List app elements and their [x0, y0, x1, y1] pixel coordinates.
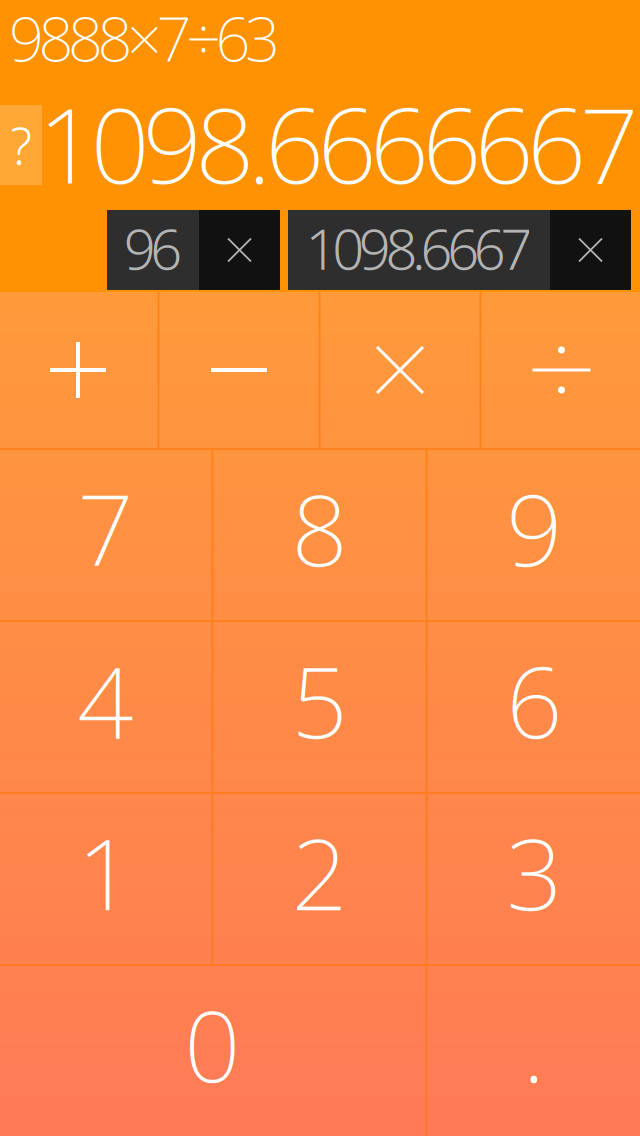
button[interactable]: 6 — [428, 622, 640, 792]
button[interactable]: Add — [0, 292, 157, 448]
button[interactable]: Help — [0, 105, 42, 185]
staticText: 3 — [506, 806, 562, 937]
button[interactable]: Remove 96 — [199, 210, 280, 290]
button[interactable]: 0 — [0, 966, 425, 1136]
staticText: 1098.6667 — [306, 211, 532, 285]
button[interactable]: 4 — [0, 622, 211, 792]
button[interactable]: Divide — [481, 292, 640, 448]
staticText: 8 — [291, 462, 347, 593]
staticText: 6 — [506, 634, 562, 765]
button[interactable]: 3 — [428, 794, 640, 964]
button[interactable]: 1 — [0, 794, 211, 964]
button[interactable]: 5 — [213, 622, 426, 792]
staticText: 5 — [291, 634, 347, 765]
staticText: 9 — [506, 462, 562, 593]
staticText: 96 — [124, 211, 182, 285]
staticText: 4 — [77, 634, 133, 765]
button[interactable]: 8 — [213, 450, 426, 620]
button[interactable]: 9 — [428, 450, 640, 620]
button[interactable]: 2 — [213, 794, 426, 964]
staticText: . — [523, 978, 546, 1109]
staticText: 7 — [77, 462, 133, 593]
staticText: 9888×7÷63 — [9, 0, 280, 78]
staticText: 1 — [77, 806, 133, 937]
button[interactable]: Multiply — [320, 292, 479, 448]
button[interactable]: 1098.6667 — [288, 210, 550, 290]
button[interactable]: Remove 1098.6667 — [550, 210, 631, 290]
staticText: 2 — [291, 806, 347, 937]
staticText: ? — [10, 111, 31, 179]
button[interactable]: 7 — [0, 450, 211, 620]
staticText: 1098.6666667 — [38, 74, 638, 212]
staticText: 0 — [184, 978, 240, 1109]
button[interactable]: 96 — [107, 210, 199, 290]
button[interactable]: . — [427, 966, 640, 1136]
button[interactable]: Subtract — [159, 292, 318, 448]
